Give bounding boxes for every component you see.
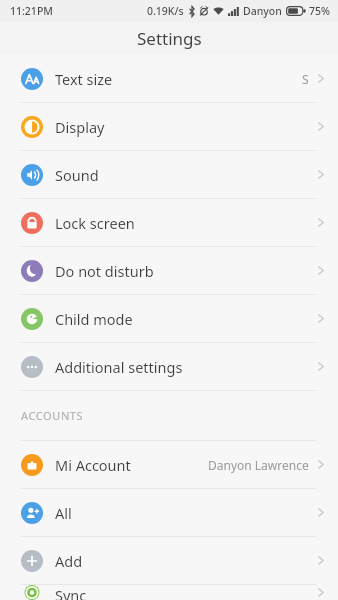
staticText: Danyon	[243, 4, 282, 18]
other: Open Add	[317, 554, 325, 567]
staticText: S	[302, 71, 309, 87]
staticText: Add	[55, 551, 83, 571]
other: Open Mi Account	[317, 458, 325, 471]
button[interactable]: Additional settings	[0, 343, 338, 390]
button[interactable]: Display	[0, 103, 338, 150]
other: Open Display	[317, 120, 325, 133]
button[interactable]: Sound	[0, 151, 338, 198]
staticText: Display	[55, 117, 105, 137]
staticText: All	[55, 503, 72, 523]
other: Open Text size	[317, 72, 325, 85]
button[interactable]: Sync	[0, 585, 338, 600]
staticText: Do not disturb	[55, 261, 154, 281]
staticText: Mi Account	[55, 455, 131, 475]
other: Open All	[317, 506, 325, 519]
other: Open Sound	[317, 168, 325, 181]
staticText: Sound	[55, 165, 99, 185]
button[interactable]: Do not disturb	[0, 247, 338, 294]
other: Open Sync	[317, 586, 325, 599]
button[interactable]: Text size	[0, 55, 338, 102]
staticText: Settings	[137, 27, 202, 50]
staticText: Additional settings	[55, 357, 183, 377]
staticText: Text size	[55, 69, 113, 89]
staticText: ACCOUNTS	[21, 408, 84, 423]
button[interactable]: Lock screen	[0, 199, 338, 246]
button[interactable]: Mi Account	[0, 441, 338, 488]
staticText: 75%	[309, 4, 330, 18]
staticText: Child mode	[55, 309, 133, 329]
other: Open Additional settings	[317, 360, 325, 373]
button[interactable]: All	[0, 489, 338, 536]
other: Open Lock screen	[317, 216, 325, 229]
other: Open Do not disturb	[317, 264, 325, 277]
button[interactable]: Add	[0, 537, 338, 584]
staticText: Lock screen	[55, 213, 135, 233]
staticText: Danyon Lawrence	[208, 457, 309, 473]
button[interactable]: Child mode	[0, 295, 338, 342]
other: Open Child mode	[317, 312, 325, 325]
staticText: 11:21PM	[10, 4, 53, 18]
staticText: 0.19K/s	[147, 4, 184, 18]
staticText: Sync	[55, 585, 87, 600]
